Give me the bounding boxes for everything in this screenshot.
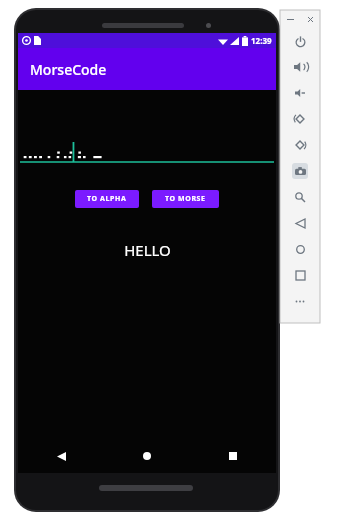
button[interactable]: Power bbox=[280, 28, 320, 54]
button[interactable]: Back bbox=[18, 439, 104, 473]
staticText: MorseCode bbox=[30, 60, 107, 79]
button[interactable]: TO ALPHA bbox=[75, 190, 139, 208]
button[interactable]: Volume down bbox=[280, 80, 320, 106]
button[interactable]: Home bbox=[280, 236, 320, 262]
button[interactable]: Volume up bbox=[280, 54, 320, 80]
button[interactable]: Close bbox=[300, 17, 320, 22]
button[interactable]: Screenshot bbox=[280, 158, 320, 184]
button[interactable]: Zoom bbox=[280, 184, 320, 210]
button[interactable]: Recent apps bbox=[280, 262, 320, 288]
staticText: TO MORSE bbox=[165, 194, 206, 204]
staticText: 12:39 bbox=[251, 35, 272, 46]
button[interactable]: Minimise bbox=[280, 17, 300, 22]
staticText: TO ALPHA bbox=[87, 194, 127, 204]
button[interactable]: Back bbox=[280, 210, 320, 236]
button[interactable]: Recent apps bbox=[190, 439, 276, 473]
staticText: HELLO bbox=[124, 240, 171, 260]
button[interactable]: Home bbox=[104, 439, 190, 473]
button[interactable]: Rotate right bbox=[280, 132, 320, 158]
button[interactable]: Rotate left bbox=[280, 106, 320, 132]
button[interactable]: More bbox=[280, 288, 320, 314]
button[interactable]: TO MORSE bbox=[152, 190, 219, 208]
